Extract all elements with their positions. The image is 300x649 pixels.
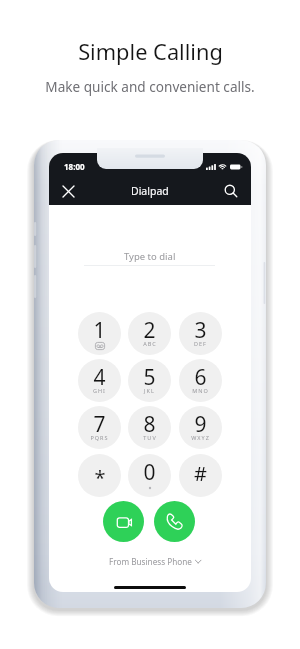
staticText: 9: [194, 410, 207, 439]
button[interactable]: *: [78, 454, 121, 497]
button[interactable]: 3: [179, 312, 222, 355]
staticText: Make quick and convenient calls.: [45, 77, 255, 96]
staticText: 6: [194, 363, 207, 392]
staticText: #: [194, 460, 207, 487]
button[interactable]: 9: [179, 406, 222, 449]
button[interactable]: 2: [128, 312, 171, 355]
button[interactable]: #: [179, 454, 222, 497]
button[interactable]: Call: [154, 501, 195, 542]
staticText: DEF: [194, 340, 207, 347]
staticText: 3: [194, 316, 207, 345]
button[interactable]: 5: [128, 359, 171, 402]
staticText: ABC: [143, 340, 157, 347]
staticText: 7: [93, 410, 106, 439]
staticText: MNO: [192, 387, 209, 394]
staticText: TUV: [143, 434, 157, 441]
staticText: 2: [143, 316, 156, 345]
button[interactable]: Video call: [103, 501, 144, 542]
staticText: PQRS: [90, 434, 109, 441]
button[interactable]: 4: [78, 359, 121, 402]
staticText: Simple Calling: [78, 37, 223, 67]
staticText: 5: [143, 363, 156, 392]
staticText: WXYZ: [191, 434, 210, 441]
button[interactable]: From Business Phone: [101, 554, 199, 568]
staticText: 4: [93, 363, 106, 392]
staticText: Type to dial: [124, 250, 176, 263]
staticText: From Business Phone: [109, 556, 192, 567]
staticText: Dialpad: [131, 184, 169, 198]
staticText: 18:00: [64, 161, 85, 172]
staticText: GHI: [93, 387, 106, 394]
button[interactable]: 7: [78, 406, 121, 449]
button[interactable]: Close: [54, 177, 82, 205]
button[interactable]: 1: [78, 312, 121, 355]
button[interactable]: Search: [217, 177, 245, 205]
button[interactable]: 6: [179, 359, 222, 402]
staticText: *: [94, 464, 106, 491]
staticText: 8: [143, 410, 156, 439]
staticText: 0: [143, 458, 156, 487]
staticText: JKL: [144, 387, 155, 394]
staticText: 1: [93, 316, 106, 345]
button[interactable]: 0: [128, 454, 171, 497]
button[interactable]: 8: [128, 406, 171, 449]
